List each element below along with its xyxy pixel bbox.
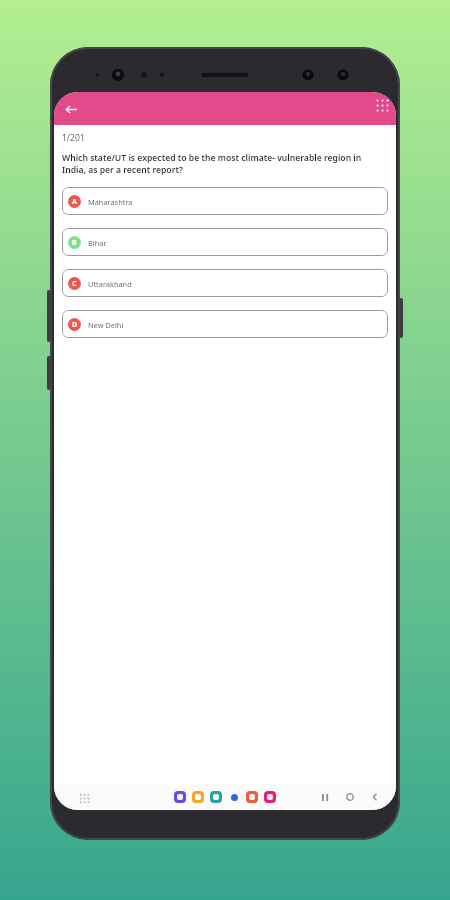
button[interactable]: A: [62, 187, 388, 215]
staticText: 1/201: [62, 132, 85, 144]
staticText: Bihar: [88, 238, 107, 248]
button[interactable]: Home: [343, 790, 357, 804]
button[interactable]: D: [62, 310, 388, 338]
staticText: Uttarakhand: [88, 279, 132, 289]
staticText: B: [72, 238, 77, 248]
button[interactable]: App 4: [228, 791, 240, 803]
button[interactable]: App 3: [210, 791, 222, 803]
button[interactable]: App 5: [246, 791, 258, 803]
staticText: D: [72, 320, 78, 330]
button[interactable]: Back: [58, 96, 84, 122]
button[interactable]: C: [62, 269, 388, 297]
button[interactable]: Apps menu: [371, 94, 393, 116]
button[interactable]: App 6: [264, 791, 276, 803]
staticText: C: [72, 279, 77, 289]
staticText: New Delhi: [88, 320, 124, 330]
button[interactable]: All apps: [74, 788, 92, 806]
staticText: Maharashtra: [88, 197, 133, 207]
button[interactable]: Recent apps: [318, 790, 332, 804]
button[interactable]: B: [62, 228, 388, 256]
button[interactable]: App 1: [174, 791, 186, 803]
staticText: Which state/UT is expected to be the mos…: [62, 152, 386, 176]
staticText: A: [72, 197, 77, 207]
button[interactable]: Back: [368, 790, 382, 804]
button[interactable]: App 2: [192, 791, 204, 803]
